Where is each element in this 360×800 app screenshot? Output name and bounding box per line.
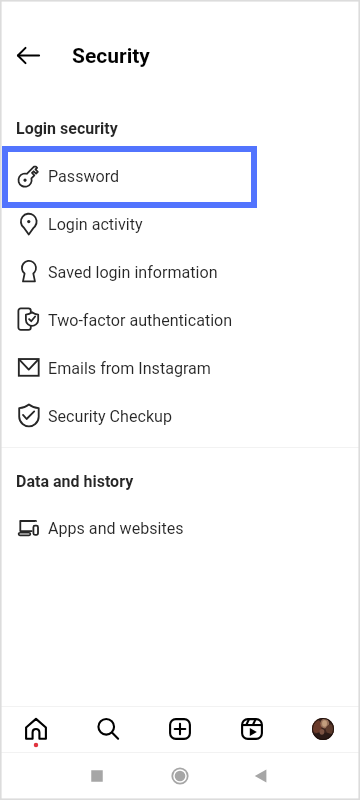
button[interactable]: Profile (302, 708, 344, 750)
staticText: Login security (16, 119, 118, 138)
button[interactable]: Security Checkup (0, 392, 360, 440)
button[interactable]: Emails from Instagram (0, 344, 360, 392)
staticText: Two-factor authentication (48, 311, 233, 330)
button[interactable]: Two-factor authentication (0, 296, 360, 344)
button[interactable]: Home (15, 708, 57, 750)
staticText: Apps and websites (48, 519, 184, 538)
staticText: Emails from Instagram (48, 359, 211, 378)
staticText: Security Checkup (48, 407, 172, 426)
staticText: Login activity (48, 215, 143, 234)
button[interactable]: Apps and websites (0, 504, 360, 552)
button[interactable]: Saved login information (0, 248, 360, 296)
button[interactable]: Password (0, 152, 360, 200)
button[interactable]: Login activity (0, 200, 360, 248)
staticText: Password (48, 167, 120, 186)
button[interactable]: Reels (231, 708, 273, 750)
staticText: Security (72, 44, 150, 69)
button[interactable]: Search (87, 708, 129, 750)
staticText: Data and history (16, 472, 134, 491)
staticText: Saved login information (48, 263, 218, 282)
button[interactable]: Create (159, 708, 201, 750)
button[interactable]: Back (6, 33, 50, 77)
